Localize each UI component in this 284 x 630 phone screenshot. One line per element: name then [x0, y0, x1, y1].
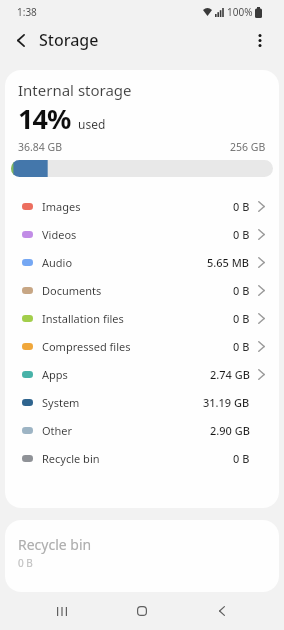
staticText: 0 B [233, 227, 250, 242]
staticText: Apps [42, 367, 68, 382]
staticText: 2.74 GB [210, 367, 250, 382]
button[interactable]: Images [5, 192, 279, 220]
staticText: 100% [227, 5, 253, 19]
button[interactable]: Compressed files [5, 332, 279, 360]
button[interactable] [22, 592, 102, 630]
staticText: 2.90 GB [210, 423, 250, 438]
staticText: 1:38 [17, 5, 37, 19]
staticText: Storage [39, 29, 99, 51]
staticText: 14% [18, 100, 71, 137]
button[interactable] [182, 592, 262, 630]
staticText: Recycle bin [18, 535, 92, 554]
button[interactable]: Documents [5, 276, 279, 304]
button[interactable]: Apps [5, 360, 279, 388]
button[interactable]: Recycle bin [5, 444, 279, 472]
staticText: 0 B [233, 283, 250, 298]
staticText: 36.84 GB [18, 140, 63, 154]
staticText: Other [42, 423, 73, 438]
button[interactable]: System [5, 388, 279, 416]
staticText: Videos [42, 227, 77, 242]
staticText: 0 B [233, 199, 250, 214]
staticText: Documents [42, 283, 102, 298]
button[interactable]: Recycle bin [5, 520, 279, 592]
button[interactable]: Other [5, 416, 279, 444]
staticText: Installation files [42, 311, 124, 326]
staticText: System [42, 395, 80, 410]
staticText: 5.65 MB [207, 255, 250, 270]
staticText: Recycle bin [42, 451, 100, 466]
button[interactable]: Videos [5, 220, 279, 248]
button[interactable]: Installation files [5, 304, 279, 332]
staticText: used [78, 116, 106, 132]
staticText: Images [42, 199, 81, 214]
staticText: Audio [42, 255, 73, 270]
staticText: 0 B [18, 556, 33, 570]
staticText: 0 B [233, 311, 250, 326]
button[interactable] [102, 592, 182, 630]
staticText: Compressed files [42, 339, 131, 354]
staticText: Internal storage [18, 80, 132, 100]
staticText: 31.19 GB [203, 395, 250, 410]
staticText: 0 B [233, 339, 250, 354]
button[interactable]: Audio [5, 248, 279, 276]
staticText: 0 B [233, 451, 250, 466]
button[interactable] [247, 27, 273, 53]
button[interactable] [9, 28, 33, 52]
staticText: 256 GB [230, 140, 266, 154]
